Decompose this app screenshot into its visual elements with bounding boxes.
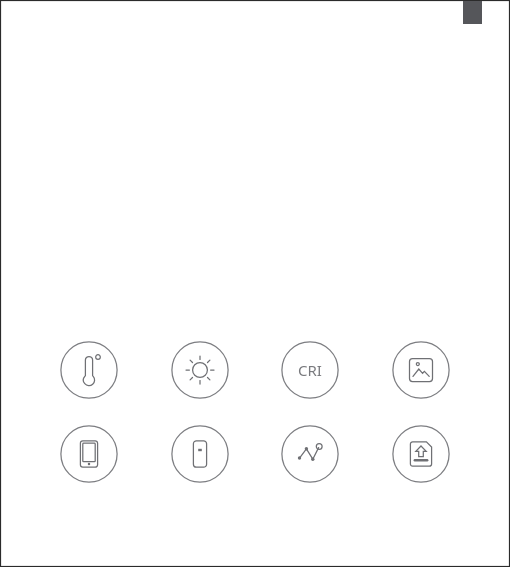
button[interactable]: Sensor bbox=[171, 425, 229, 483]
staticText: CRI bbox=[298, 360, 322, 380]
button[interactable]: Phone bbox=[60, 425, 118, 483]
button[interactable]: Chart bbox=[281, 425, 339, 483]
button[interactable]: CRI bbox=[281, 341, 339, 399]
button[interactable]: Upload bbox=[392, 425, 450, 483]
button[interactable]: Brightness bbox=[171, 341, 229, 399]
button[interactable]: Temperature bbox=[60, 341, 118, 399]
button[interactable]: Photo bbox=[392, 341, 450, 399]
